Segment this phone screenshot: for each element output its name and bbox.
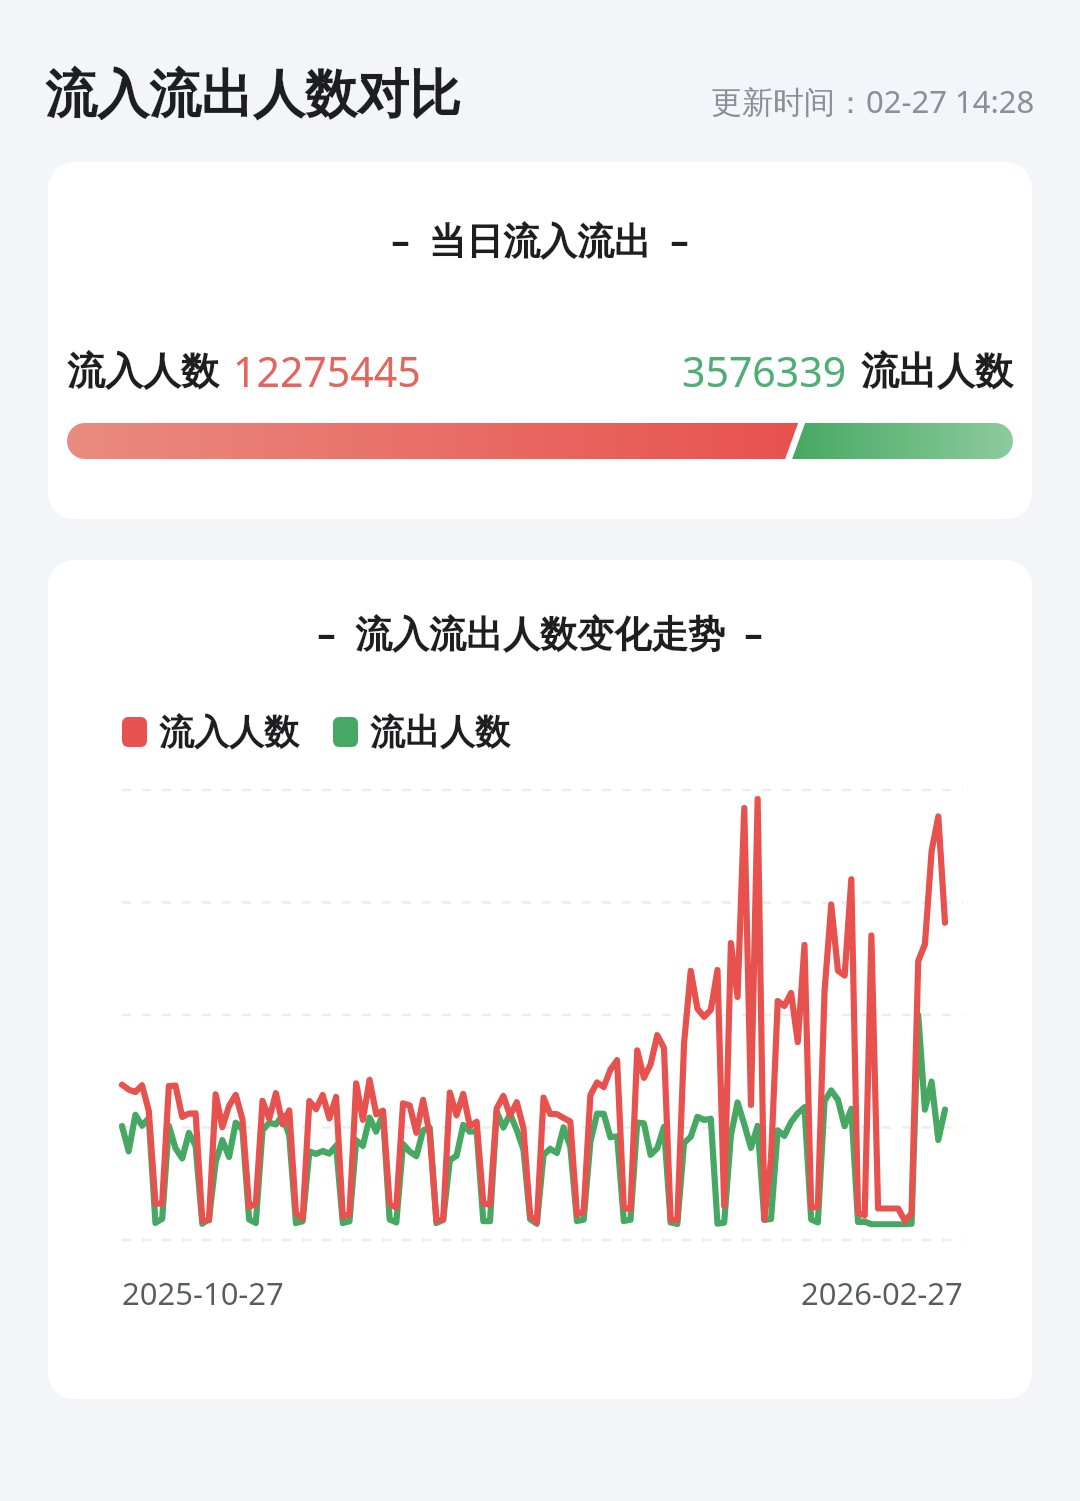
button[interactable]: – 当日流入流出 –	[48, 162, 1032, 519]
staticText: 2025-10-27	[122, 1272, 284, 1314]
staticText: 3576339	[682, 343, 847, 399]
button[interactable]: 流出人数	[333, 710, 510, 754]
staticText: 流入人数	[67, 347, 219, 395]
staticText: – 当日流入流出 –	[391, 214, 689, 265]
staticText: 流入流出人数对比	[45, 62, 461, 128]
staticText: 2026-02-27	[801, 1272, 963, 1314]
staticText: 流出人数	[370, 710, 510, 754]
staticText: 流出人数	[861, 347, 1013, 395]
staticText: 更新时间：02-27 14:28	[711, 80, 1035, 122]
staticText: – 流入流出人数变化走势 –	[48, 607, 1032, 658]
button[interactable]: 流入人数	[122, 710, 299, 754]
button[interactable]: – 流入流出人数变化走势 –	[48, 560, 1032, 1399]
staticText: 12275445	[233, 343, 421, 399]
staticText: 流入人数	[159, 710, 299, 754]
